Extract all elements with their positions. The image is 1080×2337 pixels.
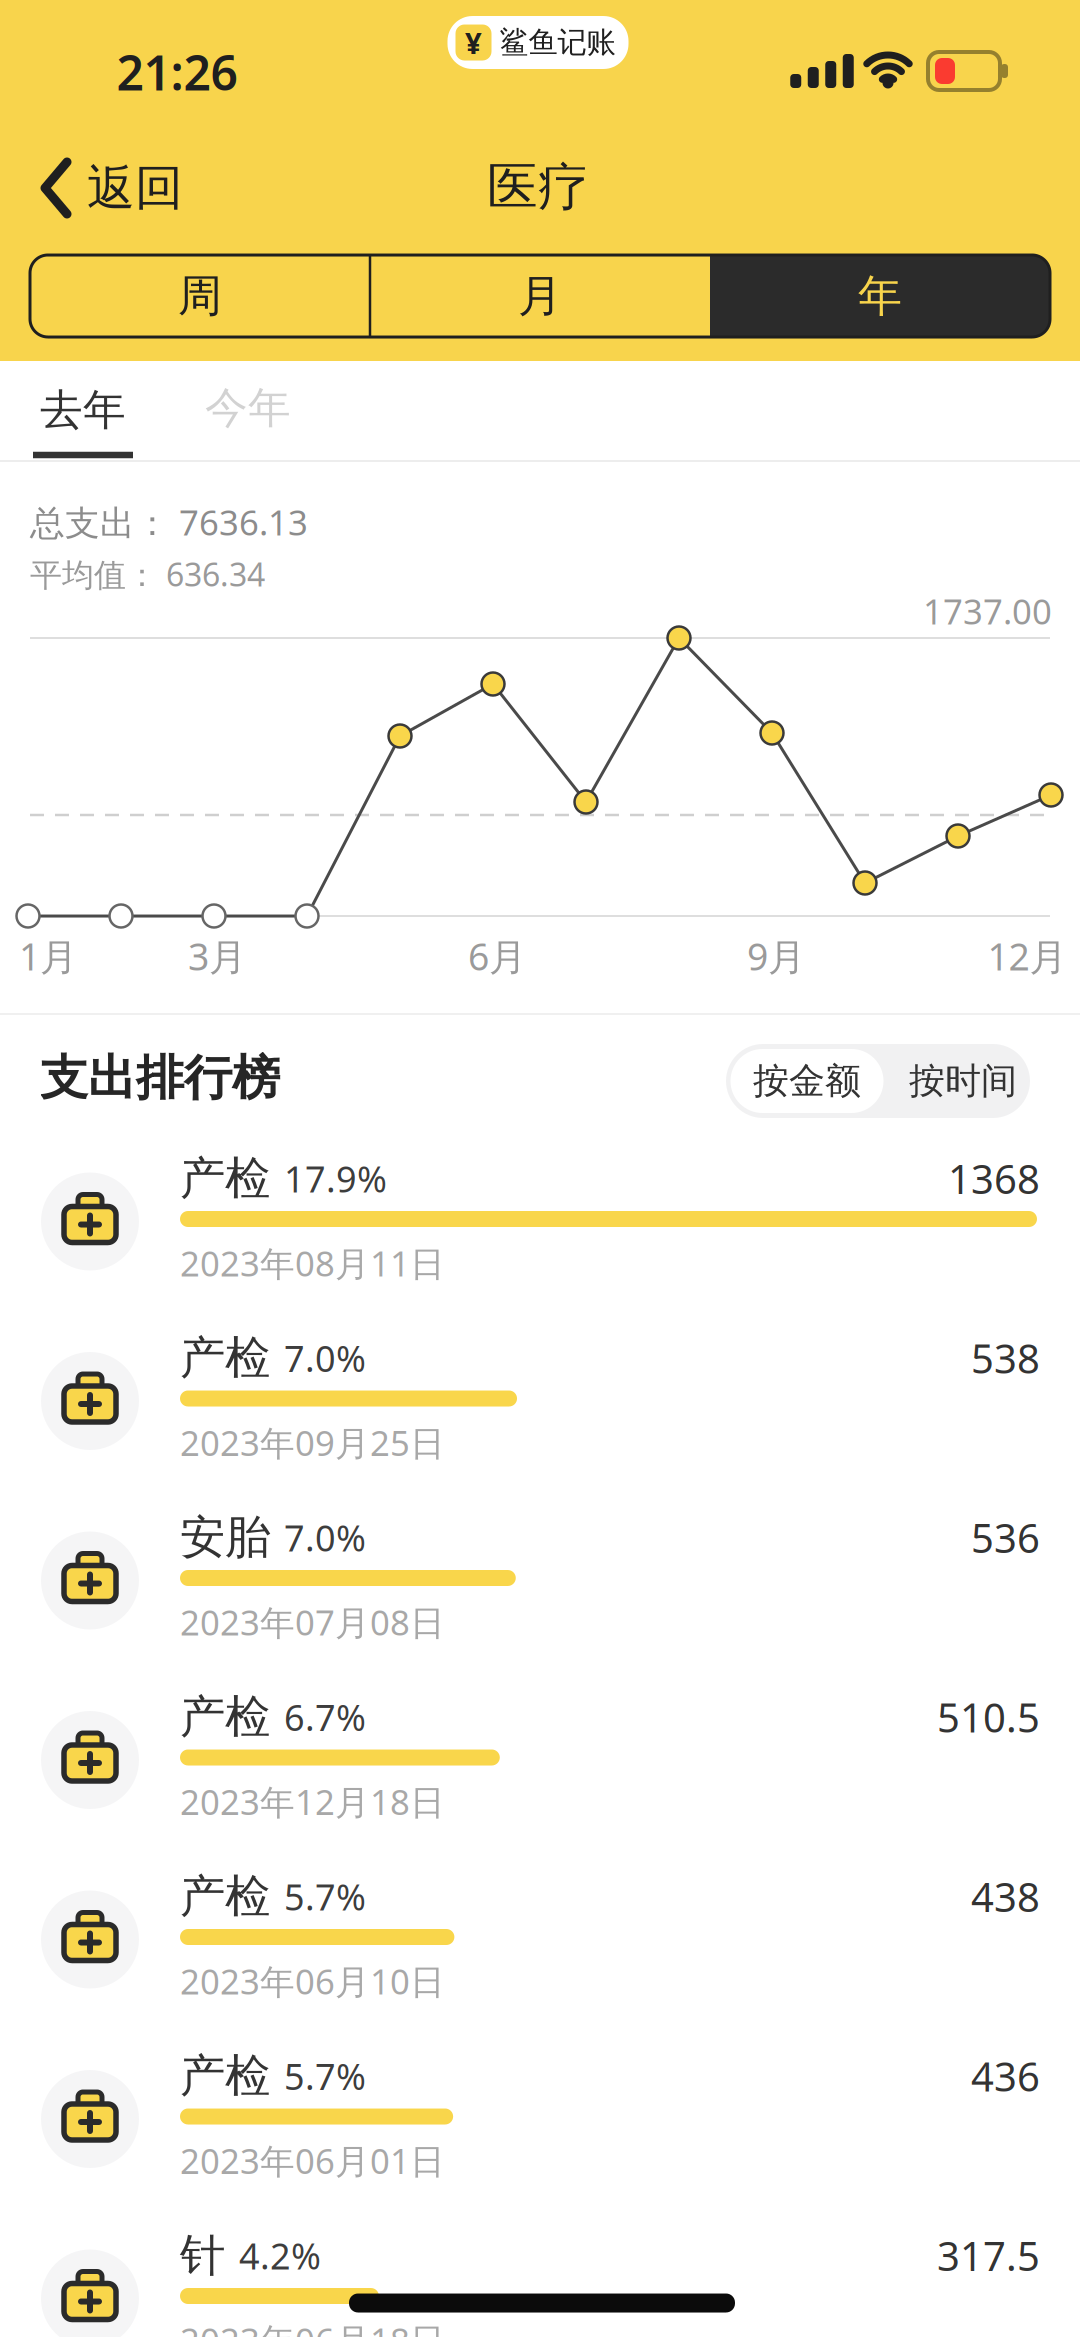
staticText: 4.2% xyxy=(239,2232,321,2279)
staticText: 医疗 xyxy=(487,156,589,218)
staticText: 返回 xyxy=(87,158,183,217)
staticText: 支出排行榜 xyxy=(40,1048,280,1107)
button[interactable]: 年 xyxy=(710,255,1050,337)
staticText: 去年 xyxy=(40,384,126,436)
staticText: 5.7% xyxy=(284,1873,366,1920)
button[interactable]: 月 xyxy=(370,255,710,337)
staticText: 产检 xyxy=(180,1151,270,1206)
staticText: 510.5 xyxy=(937,1690,1040,1743)
button[interactable]: 产检 xyxy=(0,1132,1080,1311)
staticText: 2023年06月18日 xyxy=(180,2317,445,2337)
staticText: ¥ xyxy=(465,23,482,62)
staticText: 2023年07月08日 xyxy=(180,1599,445,1645)
staticText: 436 xyxy=(971,2049,1040,2102)
staticText: 17.9% xyxy=(284,1155,387,1202)
staticText: 12月 xyxy=(987,931,1066,981)
staticText: 7.0% xyxy=(284,1334,366,1382)
staticText: 针 xyxy=(180,2228,225,2283)
staticText: 1月 xyxy=(19,931,77,981)
staticText: 产检 xyxy=(180,1689,270,1745)
staticText: 2023年06月10日 xyxy=(180,1958,445,2004)
button[interactable]: 去年 xyxy=(18,362,148,458)
staticText: 317.5 xyxy=(937,2229,1040,2282)
staticText: 产检 xyxy=(180,2048,270,2104)
staticText: 安胎 xyxy=(180,1510,270,1565)
staticText: 1737.00 xyxy=(923,588,1052,634)
staticText: 平均值： 636.34 xyxy=(30,553,265,595)
staticText: 周 xyxy=(178,269,222,323)
staticText: 438 xyxy=(971,1870,1040,1923)
staticText: 9月 xyxy=(747,931,805,981)
staticText: 1368 xyxy=(948,1152,1040,1205)
staticText: 2023年09月25日 xyxy=(180,1419,445,1465)
staticText: 产检 xyxy=(180,1869,270,1924)
button[interactable]: 针 xyxy=(0,2209,1080,2337)
button[interactable]: 返回 xyxy=(41,158,183,217)
staticText: 总支出： 7636.13 xyxy=(30,499,308,545)
staticText: 21:26 xyxy=(116,40,237,104)
staticText: 月 xyxy=(518,269,562,323)
staticText: 今年 xyxy=(205,382,291,434)
staticText: 2023年06月01日 xyxy=(180,2137,445,2183)
button[interactable]: 按时间 xyxy=(893,1049,1033,1113)
button[interactable]: 产检 xyxy=(0,1850,1080,2029)
button[interactable]: 按金额 xyxy=(730,1049,883,1113)
staticText: 2023年12月18日 xyxy=(180,1778,445,1824)
button[interactable]: 产检 xyxy=(0,1312,1080,1491)
staticText: 538 xyxy=(971,1331,1040,1384)
button[interactable]: 周 xyxy=(30,255,370,337)
staticText: 6月 xyxy=(468,931,526,981)
staticText: 鲨鱼记账 xyxy=(499,24,615,60)
staticText: 2023年08月11日 xyxy=(180,1240,445,1286)
button[interactable]: 产检 xyxy=(0,2030,1080,2209)
staticText: 5.7% xyxy=(284,2052,366,2100)
staticText: 7.0% xyxy=(284,1514,366,1561)
staticText: 产检 xyxy=(180,1330,270,1386)
staticText: 536 xyxy=(971,1511,1040,1564)
staticText: 按时间 xyxy=(909,1059,1017,1103)
button[interactable]: 产检 xyxy=(0,1671,1080,1850)
staticText: 按金额 xyxy=(753,1059,861,1103)
staticText: 年 xyxy=(858,269,902,323)
button[interactable]: 今年 xyxy=(178,363,318,453)
button[interactable]: 安胎 xyxy=(0,1491,1080,1670)
staticText: 6.7% xyxy=(284,1693,366,1741)
staticText: 3月 xyxy=(188,931,246,981)
